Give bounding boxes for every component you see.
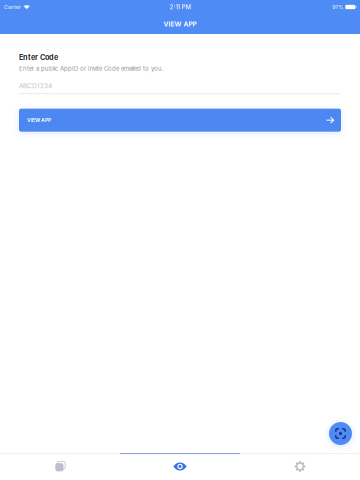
staticText: ABCD1234 xyxy=(19,82,52,90)
staticText: VIEW APP xyxy=(27,117,51,123)
staticText: VIEW APP xyxy=(163,20,196,28)
staticText: 2:11 PM xyxy=(169,3,190,11)
staticText: Carrier xyxy=(4,4,21,10)
button[interactable]: My Apps xyxy=(0,453,120,480)
button[interactable]: VIEW APP xyxy=(19,109,341,132)
staticText: 97% xyxy=(332,4,343,10)
button[interactable]: Scan code xyxy=(329,422,352,445)
staticText: Enter a public AppID or Invite Code emai… xyxy=(19,65,164,72)
button[interactable]: View App xyxy=(120,453,240,480)
staticText: Enter Code xyxy=(19,53,58,62)
button[interactable]: Settings xyxy=(240,453,360,480)
